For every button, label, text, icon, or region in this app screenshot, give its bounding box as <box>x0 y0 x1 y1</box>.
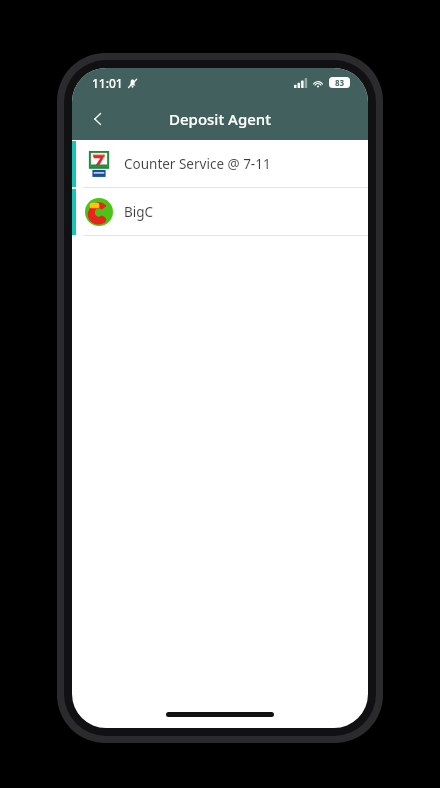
staticText: BigC <box>124 203 154 221</box>
button[interactable]: Back <box>78 99 118 139</box>
staticText: 11:01 <box>92 75 123 91</box>
button[interactable]: BigC <box>72 188 368 236</box>
staticText: 83 <box>335 77 345 88</box>
staticText: Deposit Agent <box>169 109 271 129</box>
staticText: Counter Service @ 7-11 <box>124 155 271 173</box>
button[interactable]: Counter Service @ 7-11 <box>72 140 368 188</box>
